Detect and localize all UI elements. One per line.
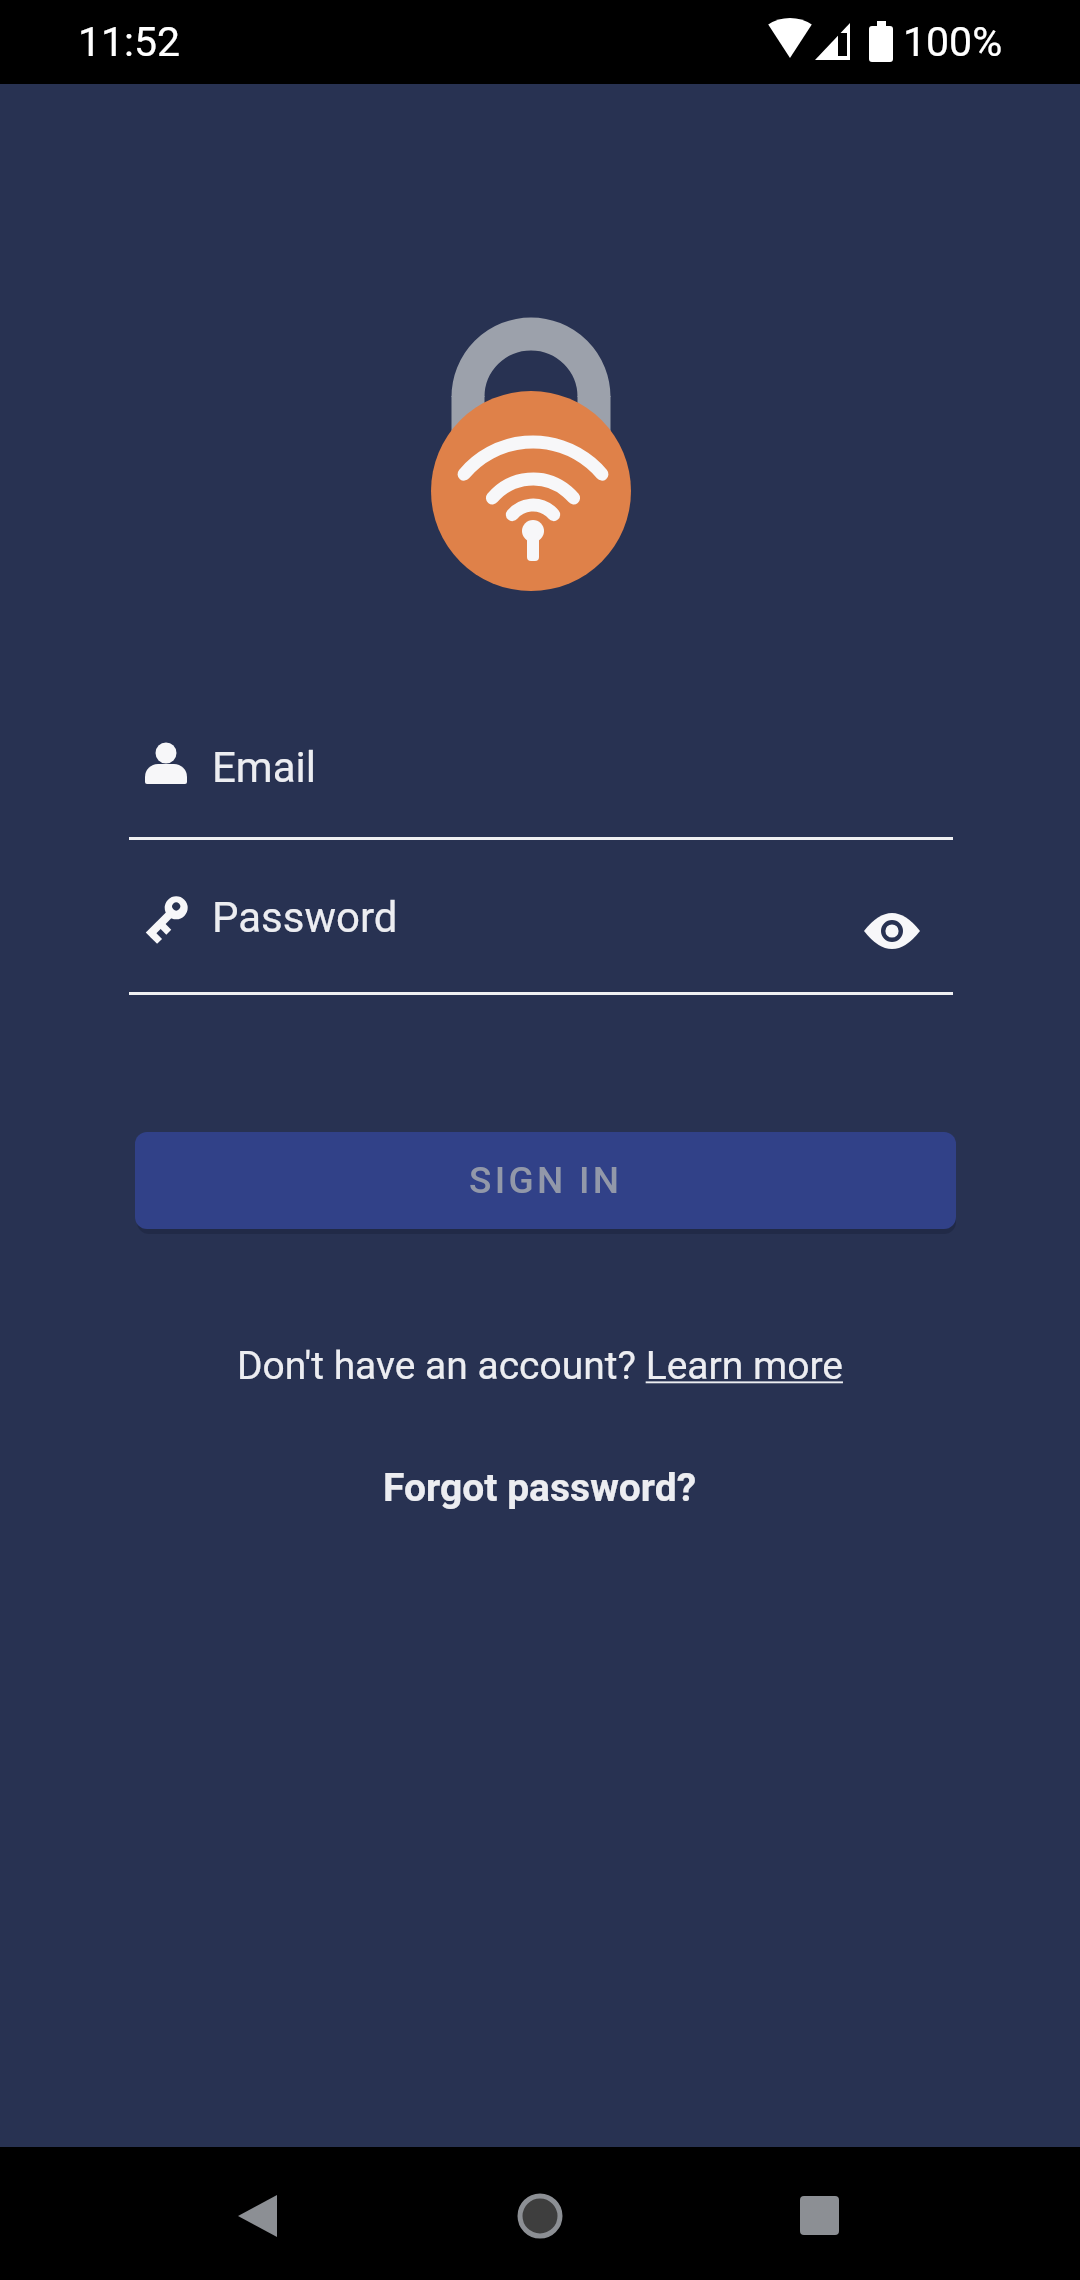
button[interactable]: Forgot password? [0, 1458, 1080, 1518]
button[interactable]: SIGN IN [135, 1132, 956, 1229]
button[interactable] [750, 2147, 890, 2280]
button[interactable] [470, 2147, 610, 2280]
staticText: SIGN IN [469, 1159, 623, 1202]
button[interactable] [852, 895, 932, 967]
staticText: 11:52 [78, 18, 181, 66]
staticText: Don't have an account? Learn more [237, 1343, 843, 1389]
button[interactable]: Email [129, 722, 953, 812]
staticText: 100% [903, 18, 1003, 66]
button[interactable]: Don't have an account? Learn more [0, 1336, 1080, 1396]
staticText: Email [212, 743, 316, 792]
button[interactable] [188, 2147, 328, 2280]
staticText: Forgot password? [383, 1465, 697, 1511]
staticText: Password [212, 893, 398, 942]
button[interactable]: Password [129, 872, 953, 962]
